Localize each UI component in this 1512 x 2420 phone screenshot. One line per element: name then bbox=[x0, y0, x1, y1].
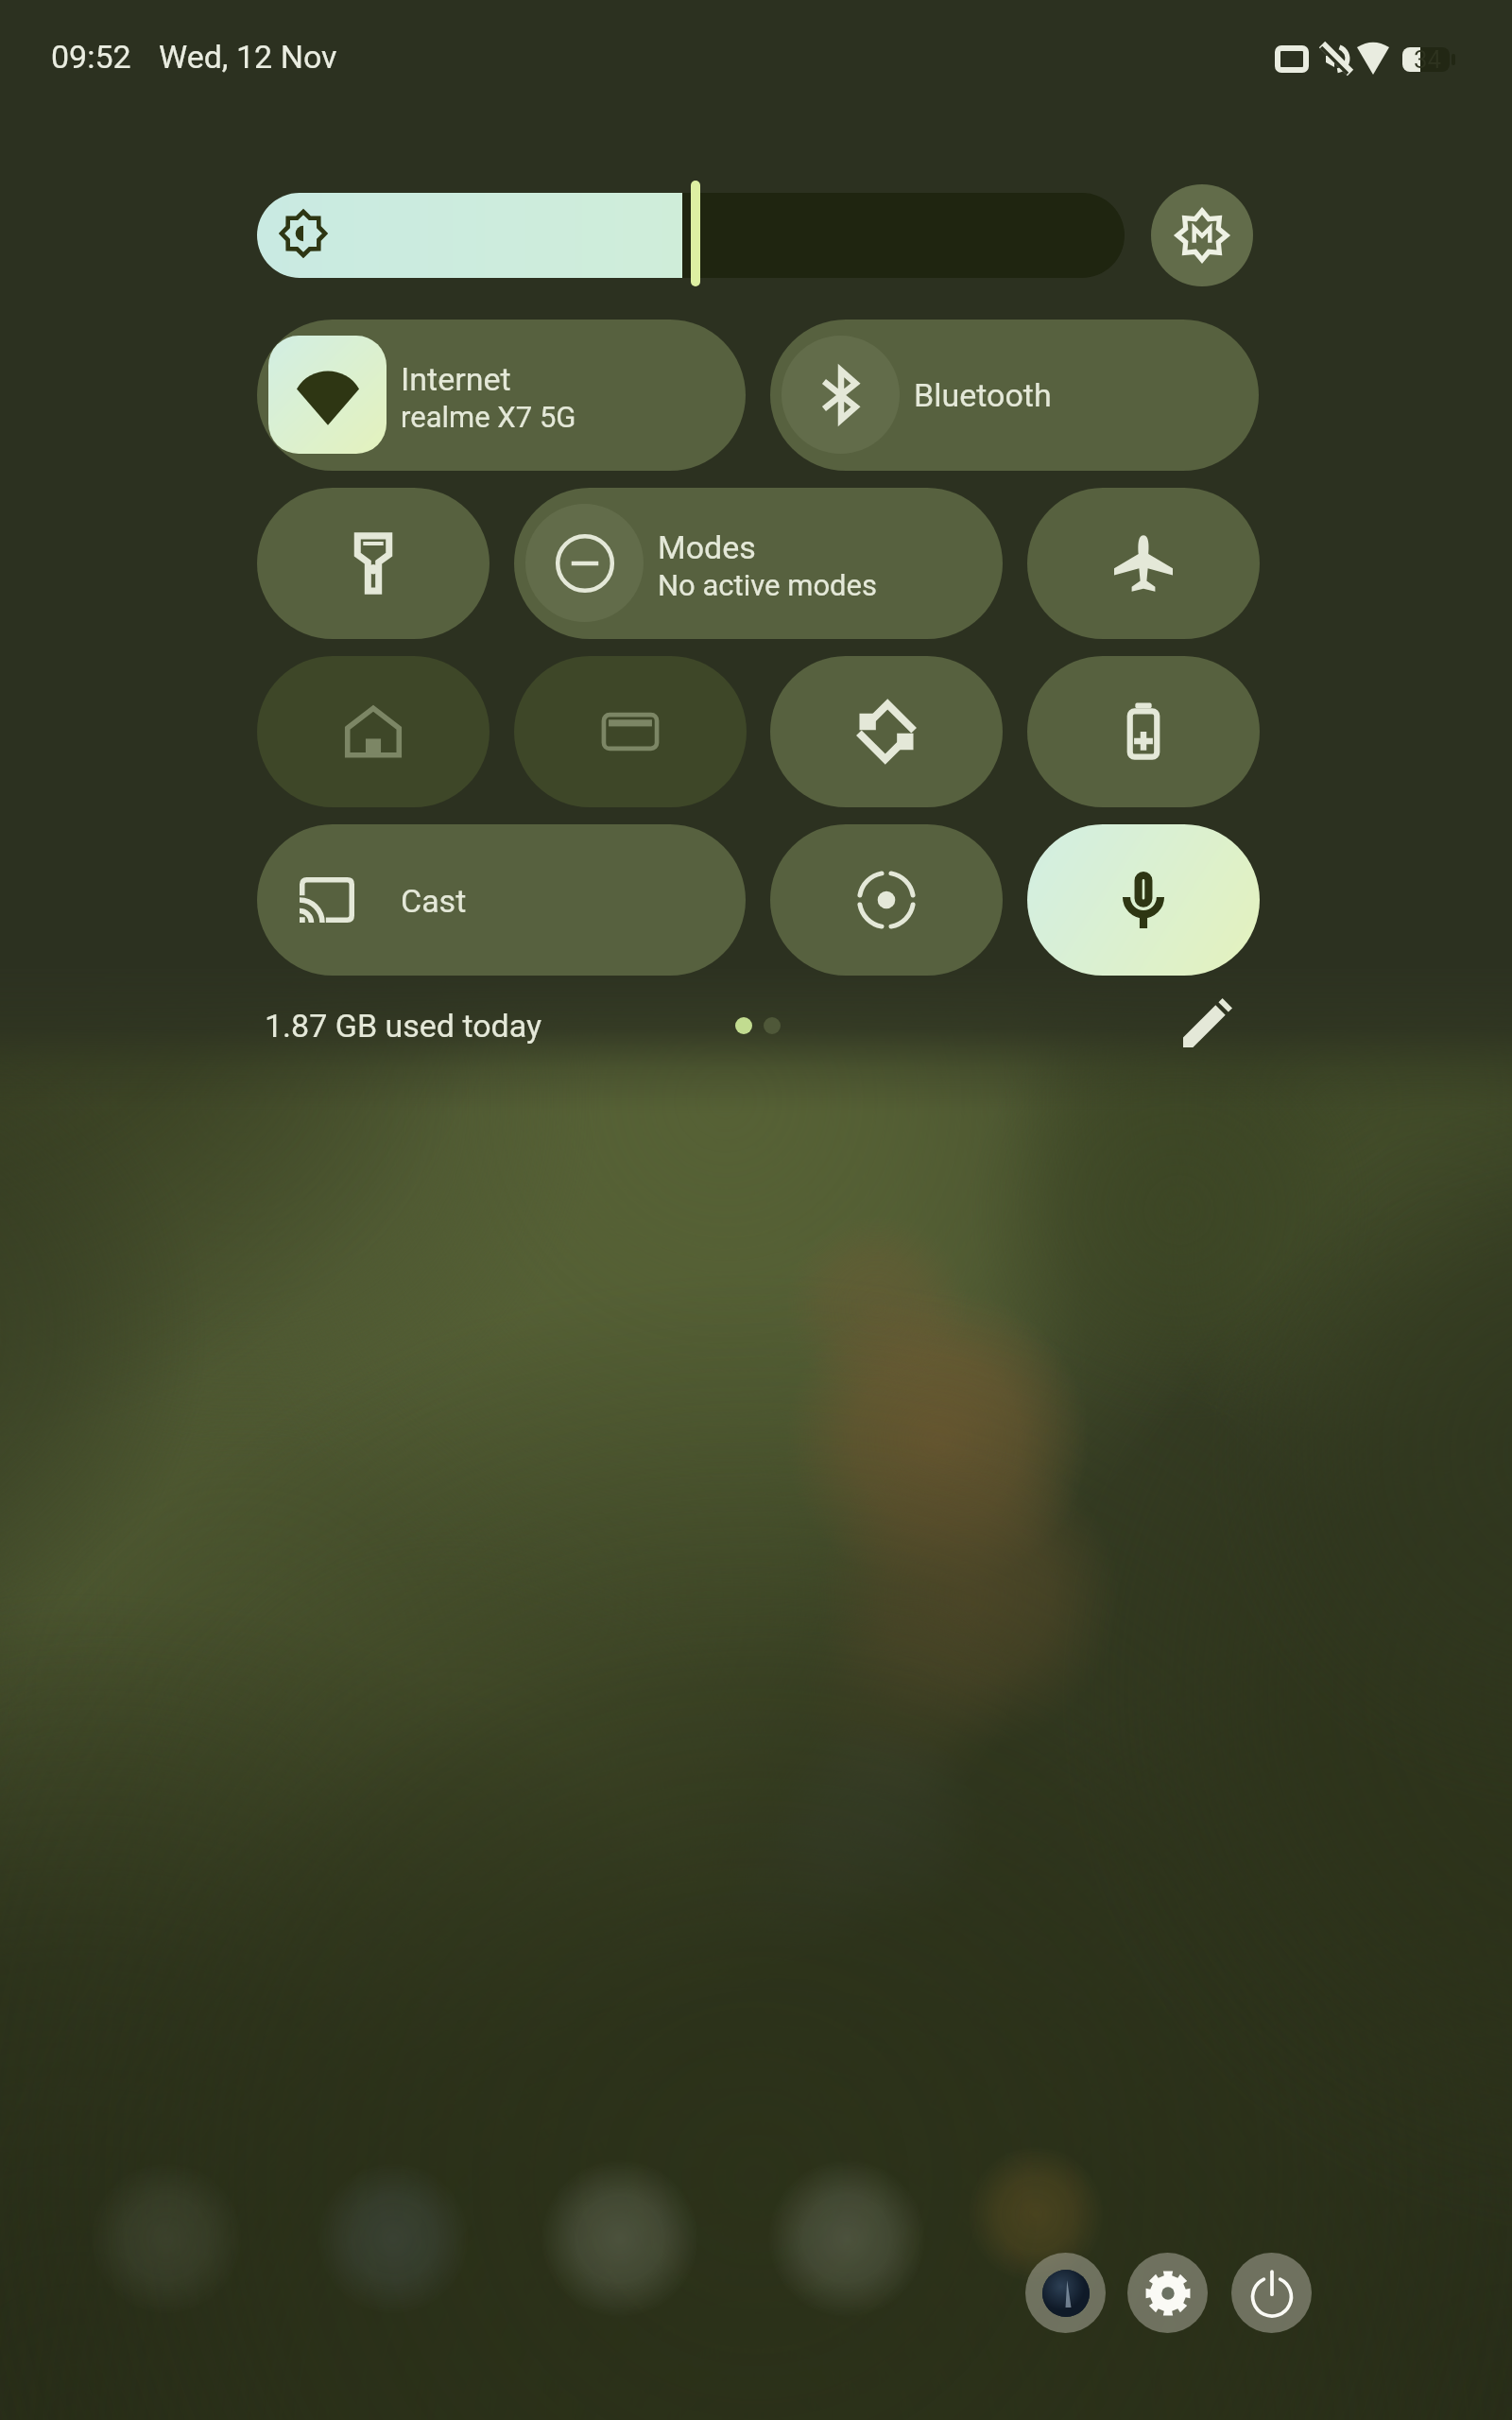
button[interactable]: Edit tiles bbox=[1174, 989, 1242, 1057]
staticText: Cast bbox=[401, 882, 467, 920]
staticText: 34 bbox=[1414, 45, 1442, 74]
button[interactable]: Settings bbox=[1127, 2253, 1208, 2333]
staticText: No active modes bbox=[658, 568, 877, 602]
button[interactable]: User profile bbox=[1025, 2253, 1106, 2333]
staticText: Modes bbox=[658, 528, 756, 566]
button[interactable]: Screen record bbox=[770, 824, 1003, 976]
button[interactable]: Flashlight bbox=[257, 488, 490, 639]
button[interactable]: Airplane mode bbox=[1027, 488, 1260, 639]
button[interactable]: Home bbox=[257, 656, 490, 807]
button[interactable]: Brightness bbox=[257, 193, 1125, 278]
button[interactable]: Bluetooth bbox=[770, 320, 1259, 471]
button[interactable]: Auto brightness bbox=[1151, 184, 1253, 286]
button[interactable]: Wallet bbox=[514, 656, 747, 807]
button[interactable]: Modes bbox=[514, 488, 1003, 639]
button[interactable]: Cast bbox=[257, 824, 746, 976]
button[interactable]: Power bbox=[1231, 2253, 1312, 2333]
staticText: realme X7 5G bbox=[401, 400, 576, 434]
staticText: Bluetooth bbox=[914, 376, 1052, 414]
staticText: 09:52 bbox=[51, 38, 131, 76]
button[interactable]: Battery saver bbox=[1027, 656, 1260, 807]
button[interactable]: Microphone bbox=[1027, 824, 1260, 976]
button[interactable]: Auto rotate bbox=[770, 656, 1003, 807]
staticText: Internet bbox=[401, 360, 511, 398]
staticText: 1.87 GB used today bbox=[265, 1007, 542, 1045]
staticText: Wed, 12 Nov bbox=[159, 38, 337, 76]
button[interactable]: Internet bbox=[257, 320, 746, 471]
